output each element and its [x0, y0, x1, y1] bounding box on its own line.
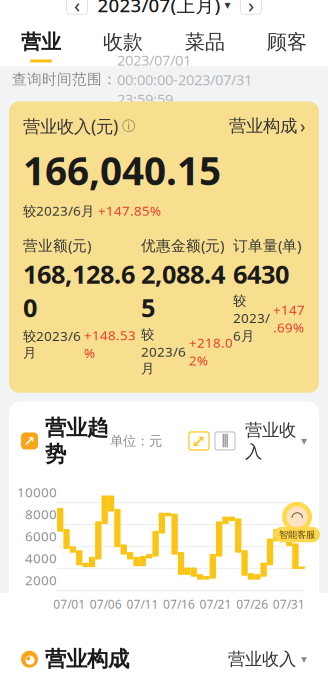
- staticText: ◕: [24, 652, 34, 666]
- staticText: 营业构成: [229, 115, 297, 137]
- staticText: 顾客: [267, 30, 307, 54]
- staticText: ‹: [74, 0, 80, 18]
- staticText: 较2023/6月: [141, 326, 186, 377]
- staticText: +147.85%: [98, 202, 161, 219]
- staticText: 较2023/6月: [233, 293, 270, 344]
- staticText: 单位：元: [110, 433, 162, 449]
- staticText: 营业收入: [245, 420, 296, 462]
- staticText: ›: [248, 0, 254, 18]
- button[interactable]: 下一月: [240, 0, 261, 14]
- staticText: ⓘ: [118, 118, 135, 134]
- staticText: 07/11: [126, 596, 158, 612]
- staticText: +147.69%: [273, 301, 305, 336]
- button[interactable]: 收款: [82, 22, 164, 66]
- staticText: 6430: [233, 257, 289, 291]
- staticText: 营业收入: [228, 649, 296, 670]
- button[interactable]: 柱状图: [215, 432, 235, 450]
- staticText: 07/16: [163, 596, 195, 612]
- staticText: ↗: [24, 433, 35, 448]
- staticText: 较2023/6月: [23, 327, 81, 361]
- button[interactable]: 顾客: [246, 22, 328, 66]
- staticText: 营业: [21, 30, 61, 54]
- staticText: 2023/07/01 00:00:00-2023/07/31 23:59:59: [117, 50, 252, 109]
- staticText: 较2023/6月: [23, 202, 94, 219]
- staticText: 07/21: [200, 596, 232, 612]
- staticText: 营业收入(元): [23, 114, 118, 137]
- staticText: 智能客服: [279, 529, 315, 540]
- button[interactable]: 营业构成: [229, 114, 305, 137]
- staticText: 营业额(元): [23, 235, 91, 255]
- button[interactable]: 营业收入: [235, 420, 307, 462]
- staticText: +148.53%: [84, 326, 136, 362]
- staticText: ›: [300, 114, 305, 137]
- button[interactable]: 智能客服: [274, 502, 320, 542]
- staticText: 2000: [25, 571, 57, 589]
- staticText: ▾: [224, 0, 230, 12]
- staticText: 营业构成: [45, 646, 129, 672]
- staticText: 查询时间范围：: [12, 70, 117, 88]
- staticText: 07/01: [53, 596, 85, 612]
- staticText: 4000: [25, 549, 57, 567]
- staticText: 营业趋势: [45, 415, 108, 467]
- staticText: 2,088.45: [141, 257, 225, 324]
- staticText: 2023/07(上月): [97, 0, 220, 17]
- staticText: ◠: [291, 509, 302, 525]
- button[interactable]: 营业收入: [228, 649, 307, 670]
- staticText: 166,040.15: [23, 144, 221, 196]
- staticText: 收款: [103, 30, 143, 54]
- staticText: 6000: [25, 527, 57, 545]
- button[interactable]: 2023/07(上月): [97, 0, 230, 17]
- staticText: ⦀: [221, 433, 228, 449]
- button[interactable]: 折线图: [189, 432, 209, 450]
- staticText: 10000: [17, 483, 57, 501]
- staticText: ▾: [301, 434, 307, 448]
- staticText: 07/31: [273, 596, 305, 612]
- staticText: 订单量(单): [233, 235, 301, 255]
- staticText: 优惠金额(元): [141, 235, 224, 255]
- staticText: ⤢: [191, 431, 206, 451]
- button[interactable]: 营业: [0, 22, 82, 66]
- staticText: 8000: [25, 505, 57, 523]
- staticText: ▾: [301, 652, 307, 666]
- staticText: +218.02%: [189, 334, 233, 369]
- button[interactable]: 菜品: [164, 22, 246, 66]
- staticText: 菜品: [185, 30, 225, 54]
- staticText: 07/06: [90, 596, 122, 612]
- staticText: 07/26: [236, 596, 268, 612]
- button[interactable]: 上一月: [66, 0, 87, 14]
- staticText: 168,128.60: [23, 257, 135, 324]
